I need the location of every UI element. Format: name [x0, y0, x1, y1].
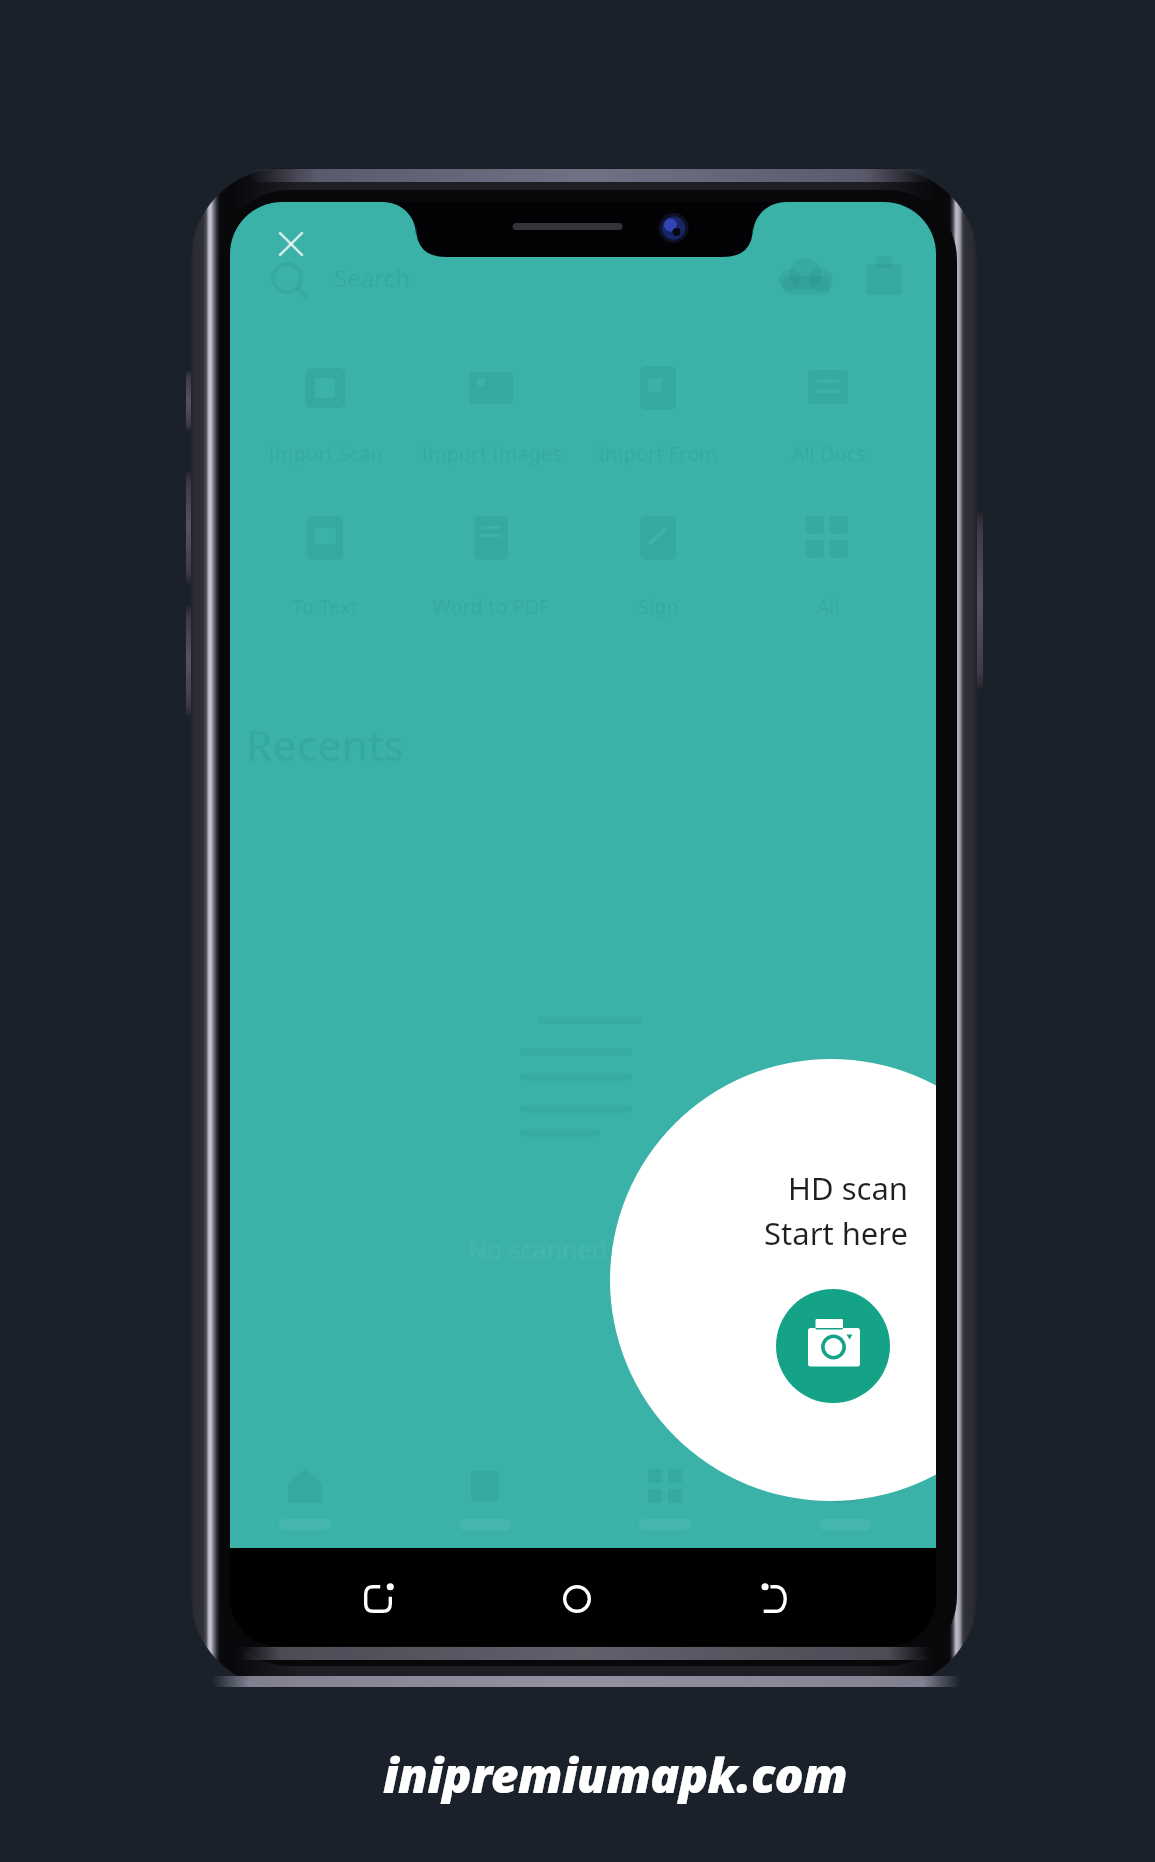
button[interactable]: HD scan tutorial [610, 1059, 936, 1501]
staticText: Recents [246, 716, 405, 773]
button[interactable]: Scan with camera [776, 1289, 890, 1403]
staticText: Start here [764, 1212, 908, 1254]
staticText: HD scan [788, 1167, 908, 1209]
button[interactable]: Back [736, 1559, 816, 1639]
button[interactable]: Home [537, 1559, 617, 1639]
button[interactable]: HD scan [668, 1167, 908, 1254]
staticText: No scanned files yet [468, 1232, 704, 1266]
staticText: inipremiumapk.com [383, 1742, 848, 1807]
button[interactable]: Recents [338, 1559, 418, 1639]
button[interactable]: Close [259, 212, 323, 276]
